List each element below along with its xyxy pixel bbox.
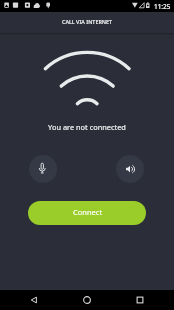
button[interactable]: Mute microphone <box>29 155 57 183</box>
button[interactable]: Speaker <box>116 155 144 183</box>
staticText: 11:25 <box>154 2 171 11</box>
staticText: CALL VIA INTERNET <box>62 18 113 25</box>
staticText: Connect <box>73 207 103 217</box>
staticText: You are not connected <box>48 122 126 132</box>
button[interactable]: Recents <box>130 290 150 310</box>
button[interactable]: Connect <box>28 201 146 225</box>
button[interactable]: Home <box>77 290 97 310</box>
button[interactable]: Back <box>24 290 44 310</box>
